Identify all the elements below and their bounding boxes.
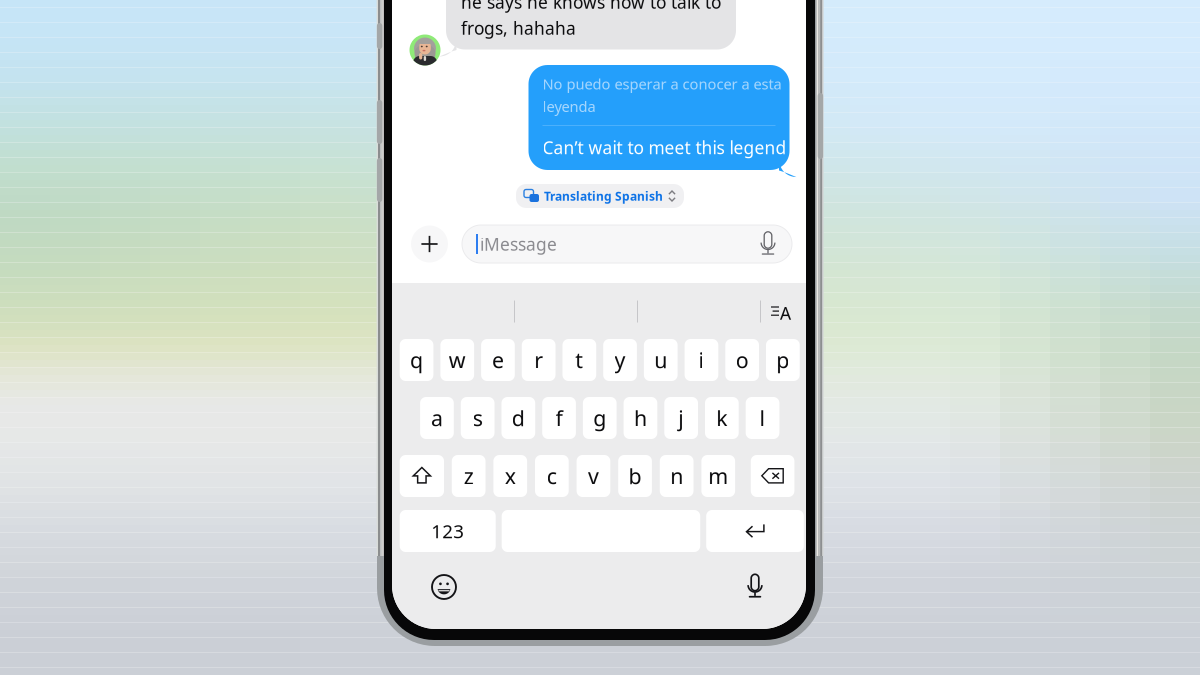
staticText: n [670, 462, 683, 490]
button[interactable]: a [420, 397, 454, 439]
button[interactable]: n [660, 455, 693, 497]
button[interactable]: Add media [411, 225, 448, 262]
staticText: f [556, 404, 563, 432]
button[interactable]: Translating Spanish [516, 184, 684, 208]
button[interactable]: y [603, 339, 637, 381]
button[interactable]: j [664, 397, 698, 439]
staticText: Translating Spanish [544, 188, 663, 204]
button[interactable]: Dictation [733, 564, 777, 608]
staticText: k [716, 404, 727, 432]
staticText: j [678, 404, 684, 432]
staticText: d [512, 404, 525, 432]
button[interactable]: v [577, 455, 610, 497]
button[interactable] [751, 455, 794, 497]
staticText: c [547, 462, 557, 490]
button[interactable]: l [746, 397, 779, 439]
staticText: l [760, 404, 766, 432]
staticText: No puedo esperar a conocer a esta [542, 74, 781, 93]
staticText: u [654, 346, 667, 374]
staticText: v [588, 462, 599, 490]
staticText: Can’t wait to meet this legend [542, 136, 786, 159]
staticText: q [410, 346, 423, 374]
button[interactable] [706, 510, 804, 552]
button[interactable]: t [562, 339, 596, 381]
button[interactable]: b [618, 455, 652, 497]
staticText: w [449, 346, 466, 374]
button[interactable]: k [705, 397, 739, 439]
staticText: he says he knows how to talk to [461, 0, 721, 13]
button[interactable]: c [535, 455, 569, 497]
button[interactable]: u [644, 339, 678, 381]
button[interactable]: r [522, 339, 555, 381]
button[interactable]: s [461, 397, 494, 439]
staticText: z [464, 462, 474, 490]
button[interactable]: f [542, 397, 576, 439]
staticText: s [473, 404, 483, 432]
button[interactable]: Emoji keyboard [422, 565, 466, 609]
staticText: t [575, 346, 583, 374]
button[interactable]: g [583, 397, 617, 439]
staticText: i [698, 346, 704, 374]
staticText: x [505, 462, 516, 490]
staticText: iMessage [480, 232, 557, 255]
staticText: m [708, 462, 728, 490]
staticText: frogs, hahaha [461, 16, 576, 39]
button[interactable]: e [481, 339, 515, 381]
staticText: y [615, 346, 626, 374]
button[interactable]: x [493, 455, 527, 497]
button[interactable]: w [440, 339, 474, 381]
staticText: leyenda [542, 96, 595, 116]
button[interactable]: h [624, 397, 657, 439]
staticText: g [593, 404, 606, 432]
staticText: 123 [431, 519, 464, 543]
button[interactable]: 123 [400, 510, 496, 552]
button[interactable]: m [701, 455, 735, 497]
staticText: a [431, 404, 443, 432]
button[interactable] [400, 455, 444, 497]
staticText: r [534, 346, 543, 374]
staticText: b [628, 462, 641, 490]
staticText: A [780, 301, 791, 324]
button[interactable]: p [766, 339, 800, 381]
staticText: p [776, 346, 789, 374]
button[interactable]: i [685, 339, 718, 381]
staticText: e [492, 346, 504, 374]
button[interactable]: d [501, 397, 535, 439]
button[interactable]: iMessage [462, 225, 792, 263]
button[interactable]: z [452, 455, 485, 497]
staticText: h [634, 404, 647, 432]
staticText: o [736, 346, 749, 374]
button[interactable]: q [400, 339, 433, 381]
button[interactable]: o [725, 339, 759, 381]
